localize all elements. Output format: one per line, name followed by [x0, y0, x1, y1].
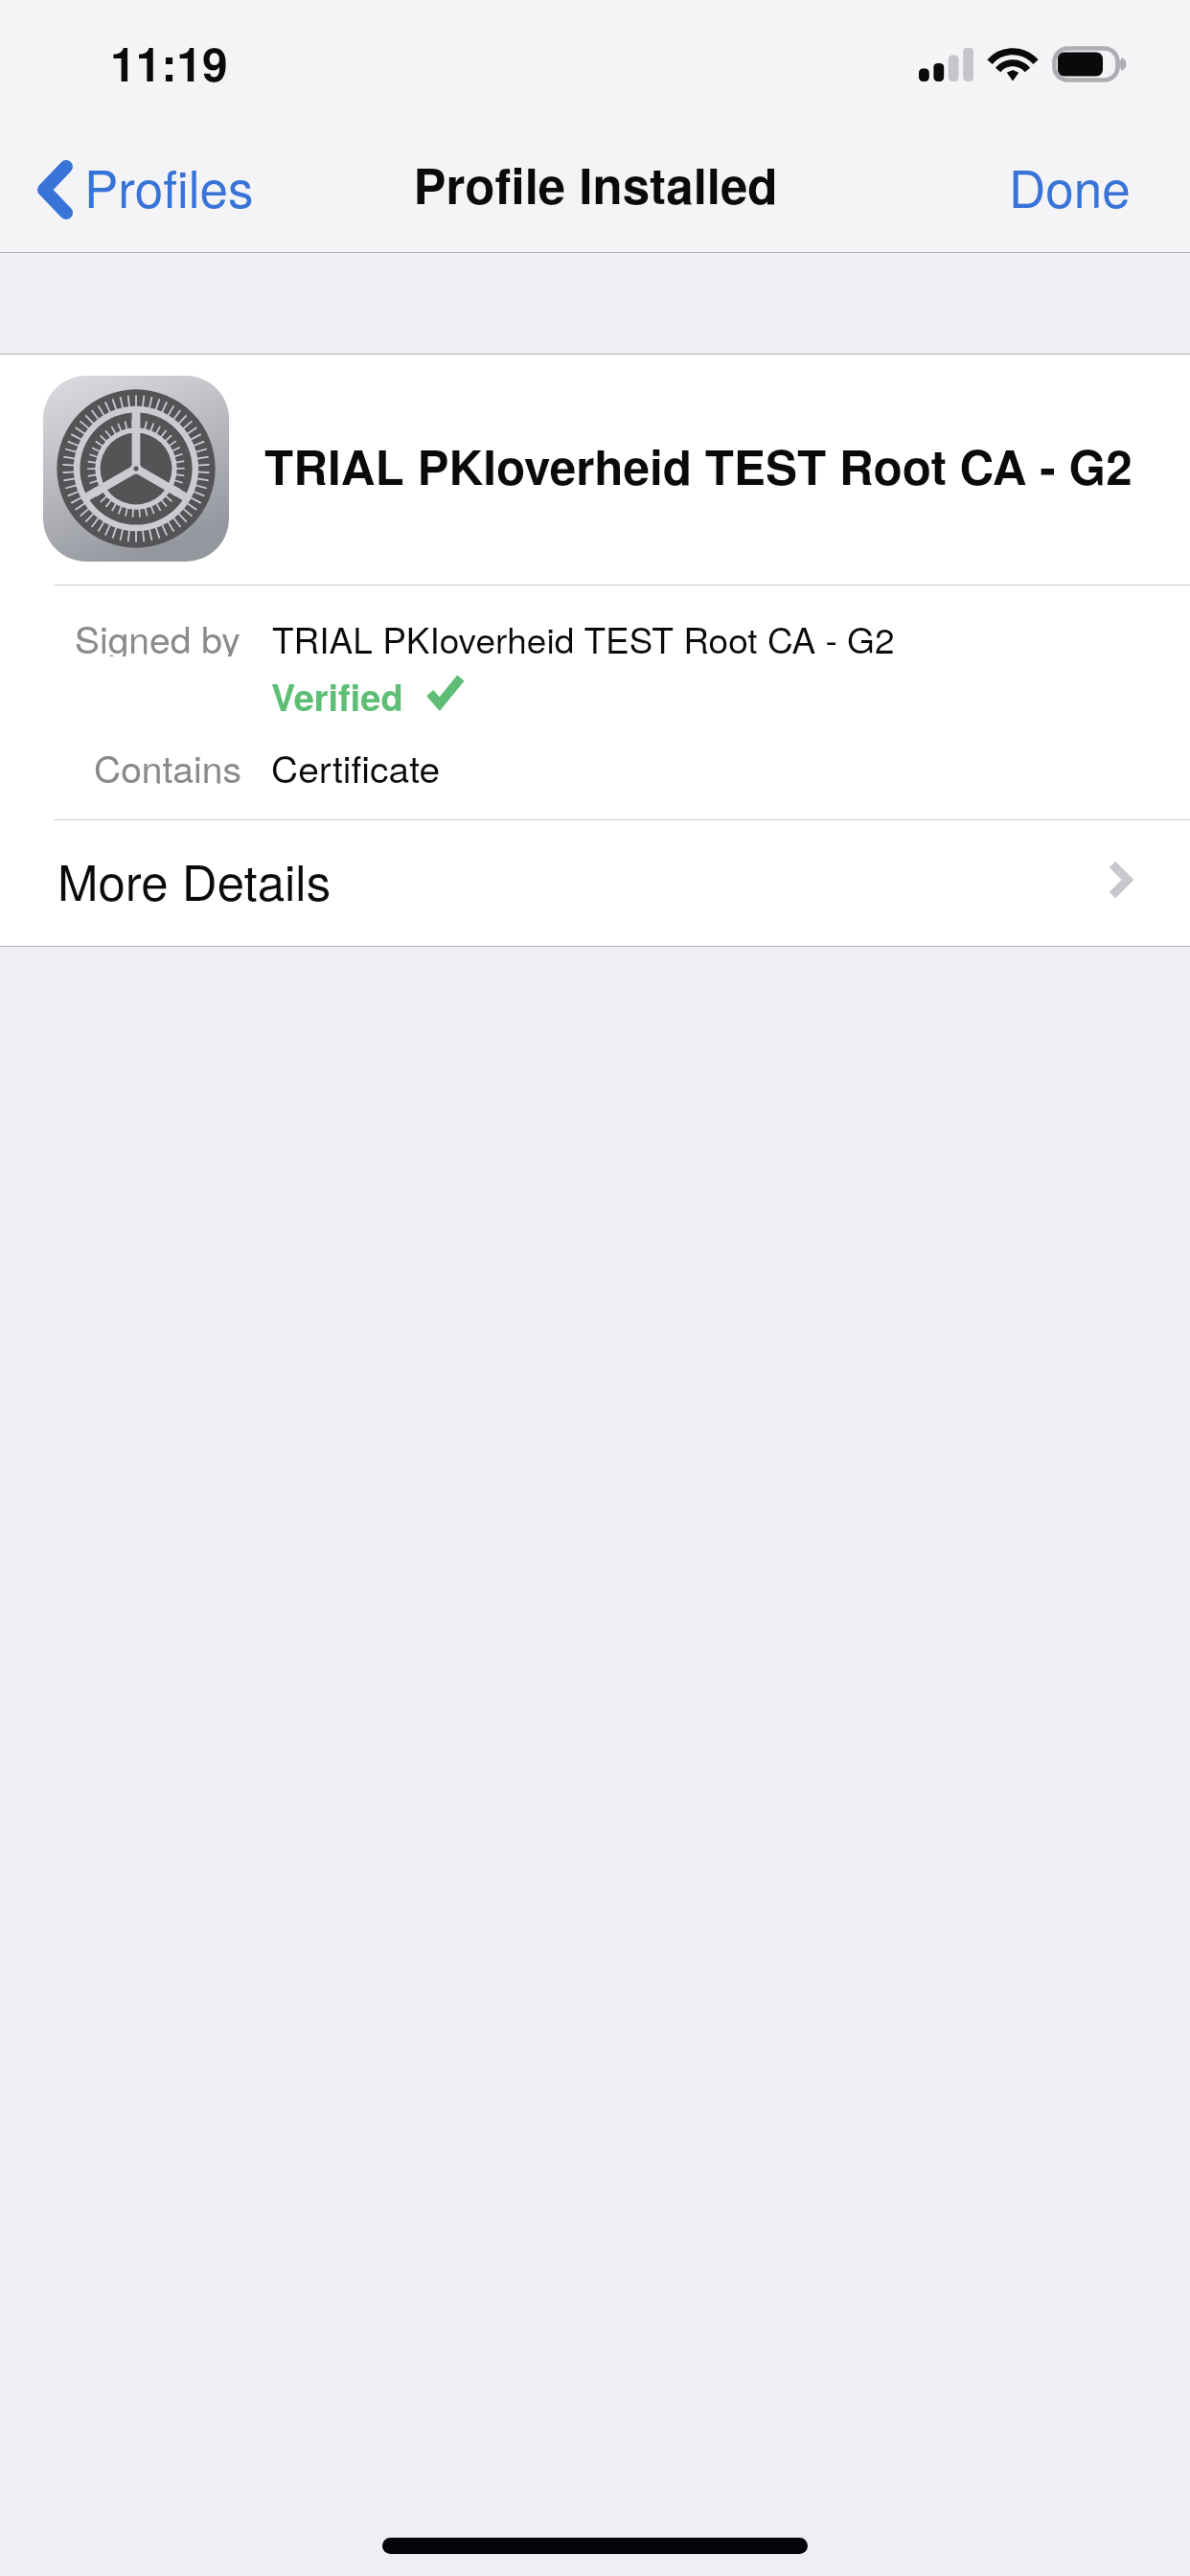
staticText: Certificate: [271, 740, 441, 786]
staticText: TRIAL PKIoverheid TEST Root CA - G2: [272, 613, 895, 659]
staticText: Done: [1009, 149, 1131, 222]
staticText: 11:19: [110, 30, 228, 83]
staticText: Profiles: [84, 149, 254, 222]
staticText: More Details: [57, 844, 332, 914]
button[interactable]: Done: [971, 123, 1190, 249]
button[interactable]: Back to Profiles: [0, 123, 254, 249]
staticText: TRIAL PKIoverheid TEST Root CA - G2: [264, 431, 1133, 499]
staticText: Signed by: [75, 610, 240, 656]
staticText: Profile Installed: [413, 149, 778, 219]
staticText: Contains: [94, 740, 241, 786]
button[interactable]: More Details: [0, 816, 1190, 942]
staticText: Verified: [271, 670, 403, 716]
